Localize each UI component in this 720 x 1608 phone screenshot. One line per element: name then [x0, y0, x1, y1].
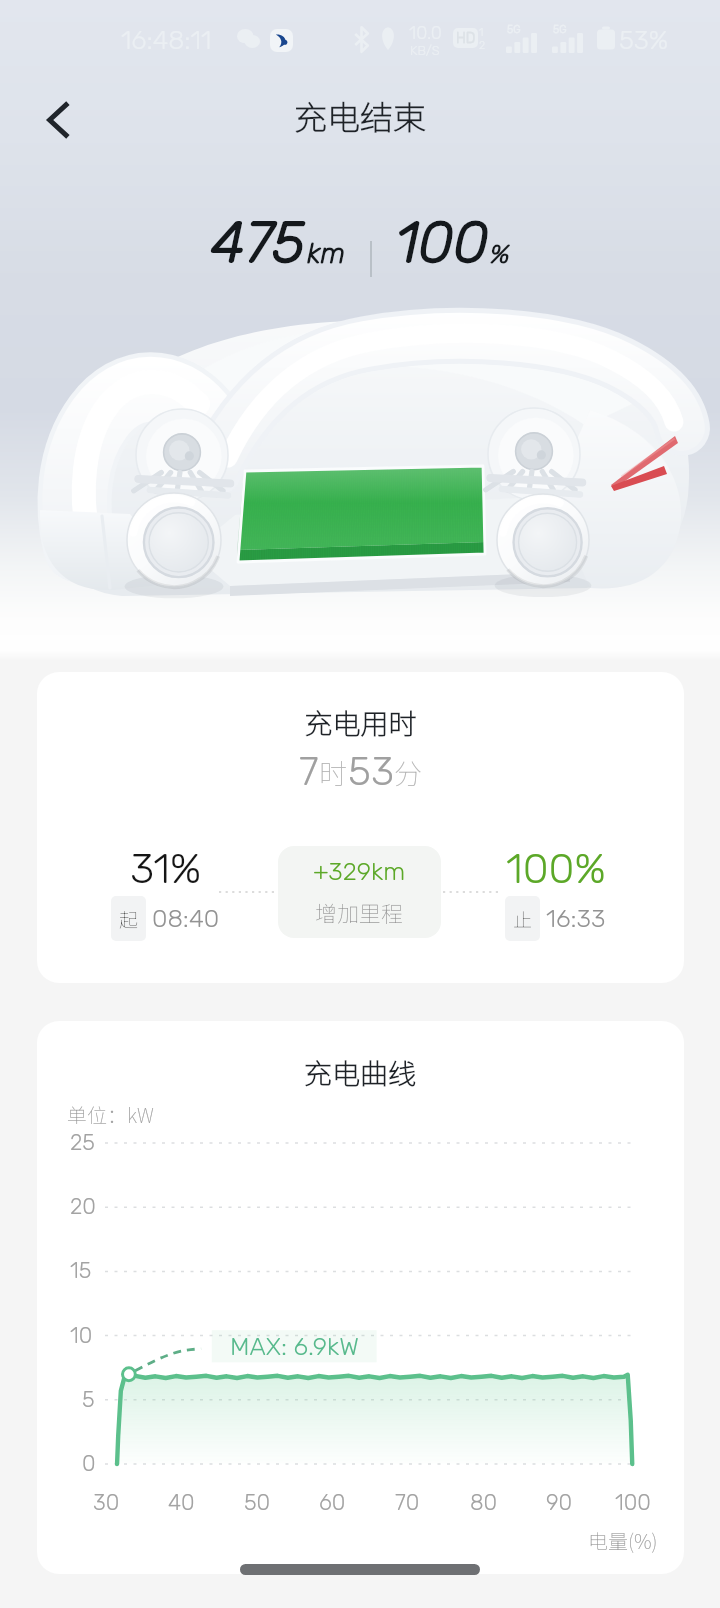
- staticText: 5G: [553, 23, 567, 36]
- staticText: 分: [394, 752, 423, 793]
- staticText: 40: [168, 1489, 195, 1515]
- staticText: 充电曲线: [304, 1052, 417, 1093]
- staticText: 475: [211, 209, 306, 277]
- staticText: km: [307, 237, 346, 270]
- staticText: 80: [470, 1489, 498, 1515]
- staticText: KB/S: [410, 43, 440, 58]
- staticText: MAX: 6.9kW: [230, 1332, 359, 1362]
- staticText: 08:40: [152, 904, 220, 934]
- staticText: 10: [70, 1322, 93, 1348]
- staticText: 25: [70, 1129, 95, 1155]
- staticText: 70: [395, 1489, 420, 1515]
- staticText: 0: [82, 1450, 96, 1476]
- staticText: 10.0: [409, 22, 442, 43]
- staticText: 单位：kW: [67, 1100, 154, 1129]
- staticText: 90: [546, 1489, 573, 1515]
- staticText: 止: [513, 905, 533, 933]
- staticText: %: [490, 239, 510, 270]
- staticText: 60: [319, 1489, 346, 1515]
- staticText: 电量(%): [588, 1526, 658, 1555]
- staticText: 7: [299, 748, 319, 795]
- staticText: 2: [479, 39, 486, 52]
- staticText: 16:33: [546, 904, 606, 934]
- staticText: 100: [396, 209, 489, 277]
- staticText: 充电用时: [304, 702, 417, 743]
- staticText: +329km: [313, 857, 406, 887]
- staticText: 增加里程: [315, 896, 404, 928]
- staticText: 100: [615, 1489, 651, 1515]
- staticText: 100%: [506, 844, 606, 894]
- staticText: 16:48:11: [121, 25, 212, 56]
- staticText: 充电结束: [294, 92, 426, 140]
- staticText: 时: [319, 752, 348, 793]
- staticText: HD: [456, 30, 476, 47]
- staticText: 31%: [130, 844, 202, 894]
- staticText: 53: [348, 748, 394, 795]
- staticText: 5: [82, 1386, 95, 1412]
- staticText: 5G: [507, 23, 521, 36]
- staticText: 53%: [619, 25, 669, 56]
- button[interactable]: Back: [28, 90, 88, 150]
- staticText: 15: [70, 1257, 92, 1283]
- staticText: 起: [119, 905, 139, 933]
- staticText: 50: [244, 1489, 271, 1515]
- staticText: 20: [70, 1193, 96, 1219]
- staticText: 30: [93, 1489, 120, 1515]
